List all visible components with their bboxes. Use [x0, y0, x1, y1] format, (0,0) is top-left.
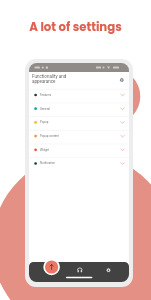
button[interactable]: Notification: [29, 157, 129, 171]
staticText: Popup content: [40, 134, 59, 137]
staticText: A lot of settings: [0, 19, 151, 35]
button[interactable]: Features: [29, 89, 129, 103]
button[interactable]: Audio: [74, 261, 86, 273]
button[interactable]: Scroll to top: [45, 260, 58, 273]
button[interactable]: Popup content: [29, 130, 129, 144]
staticText: General: [40, 107, 50, 110]
staticText: Notification: [40, 161, 55, 164]
staticText: Functionality and appearance: [32, 74, 67, 85]
button[interactable]: More settings: [103, 261, 115, 273]
button[interactable]: Widget: [29, 144, 129, 158]
button[interactable]: Popup: [29, 116, 129, 130]
staticText: Widget: [40, 148, 49, 151]
staticText: Popup: [40, 120, 49, 123]
staticText: Features: [40, 93, 52, 96]
button[interactable]: General: [29, 103, 129, 117]
button[interactable]: Settings: [117, 75, 127, 85]
